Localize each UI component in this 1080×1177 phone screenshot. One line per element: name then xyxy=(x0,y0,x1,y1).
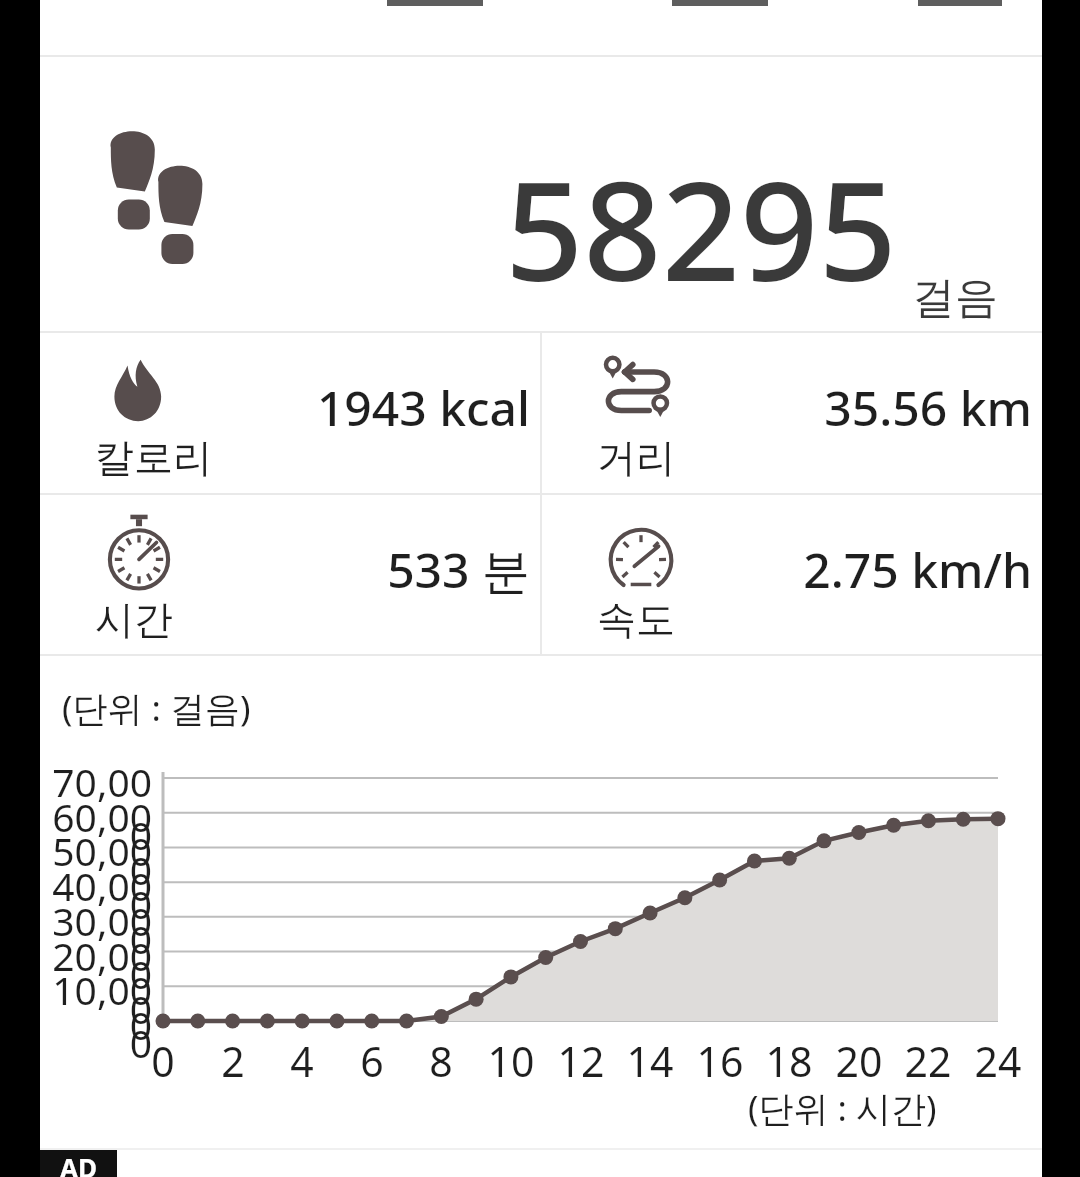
staticText: 거리 xyxy=(597,433,675,482)
button[interactable]: AD xyxy=(40,1150,117,1177)
other: 거리 xyxy=(600,349,682,431)
button[interactable]: 시간 xyxy=(40,495,540,656)
staticText: 칼로리 xyxy=(95,433,212,482)
staticText: 8 xyxy=(411,1033,471,1089)
staticText: 걸음 xyxy=(912,271,998,325)
staticText: 10,000 xyxy=(40,963,152,1069)
staticText: 2.75 km/h xyxy=(542,537,1032,602)
button[interactable]: 칼로리 xyxy=(40,333,540,493)
staticText: 20 xyxy=(829,1033,889,1089)
staticText: 시간 xyxy=(95,595,173,644)
staticText: 12 xyxy=(551,1033,611,1089)
button[interactable]: 거리 xyxy=(542,333,1042,493)
staticText: 533 분 xyxy=(40,537,530,603)
staticText: 16 xyxy=(690,1033,750,1089)
staticText: 2 xyxy=(203,1033,263,1089)
staticText: AD xyxy=(60,1150,98,1177)
staticText: 4 xyxy=(272,1033,332,1089)
staticText: 속도 xyxy=(597,595,675,644)
staticText: 20,000 xyxy=(40,929,152,1035)
staticText: 35.56 km xyxy=(542,375,1032,440)
button[interactable]: 속도 xyxy=(542,495,1042,656)
staticText: (단위 : 걸음) xyxy=(62,684,251,732)
other: 시간 xyxy=(98,511,180,593)
staticText: 1943 kcal xyxy=(40,375,530,440)
staticText: 6 xyxy=(342,1033,402,1089)
staticText: 30,000 xyxy=(40,894,152,1000)
staticText: 22 xyxy=(898,1033,958,1089)
other: 칼로리 xyxy=(98,349,180,431)
staticText: 50,000 xyxy=(40,824,152,930)
staticText: 0 xyxy=(133,1033,193,1089)
staticText: (단위 : 시간) xyxy=(748,1084,937,1132)
staticText: 58295 xyxy=(505,135,897,322)
staticText: 0 xyxy=(40,998,152,1051)
staticText: 18 xyxy=(759,1033,819,1089)
staticText: 10 xyxy=(481,1033,541,1089)
staticText: 60,000 xyxy=(40,790,152,896)
button[interactable]: Steps xyxy=(40,57,1042,333)
staticText: 24 xyxy=(968,1033,1028,1089)
other: Steps xyxy=(95,121,217,271)
staticText: 40,000 xyxy=(40,859,152,965)
other: 속도 xyxy=(600,511,682,593)
staticText: 14 xyxy=(620,1033,680,1089)
staticText: 70,000 xyxy=(40,755,152,861)
